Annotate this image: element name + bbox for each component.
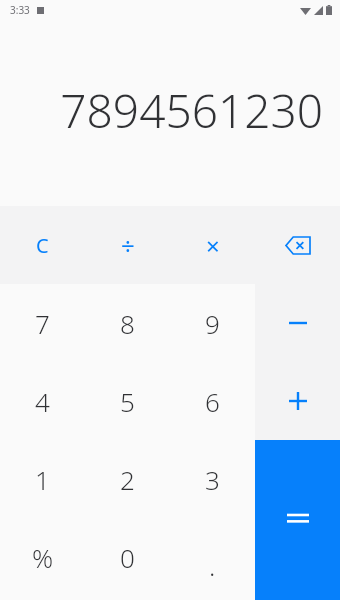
staticText: 1 (35, 462, 50, 497)
button[interactable]: 4 (0, 362, 85, 440)
button[interactable]: 6 (170, 362, 255, 440)
button[interactable]: C (0, 206, 85, 284)
staticText: × (206, 229, 220, 262)
button[interactable]: ÷ (85, 206, 170, 284)
button[interactable]: 1 (0, 440, 85, 518)
button[interactable] (255, 284, 340, 362)
staticText: C (36, 232, 49, 259)
button[interactable]: 2 (85, 440, 170, 518)
staticText: 6 (205, 384, 220, 419)
button[interactable]: Equals (255, 440, 340, 600)
button[interactable] (255, 362, 340, 440)
button[interactable]: 7 (0, 284, 85, 362)
button[interactable]: 9 (170, 284, 255, 362)
staticText: ÷ (121, 229, 135, 262)
staticText: 7894561230 (60, 79, 323, 142)
staticText: 5 (120, 384, 135, 419)
button[interactable]: × (170, 206, 255, 284)
staticText: . (209, 548, 216, 583)
staticText: 4 (35, 384, 50, 419)
button[interactable]: % (0, 518, 85, 596)
button[interactable]: Backspace (255, 206, 340, 284)
staticText: 7 (35, 306, 50, 341)
staticText: 3 (205, 462, 220, 497)
staticText: 3:33 (10, 3, 30, 17)
button[interactable]: . (170, 518, 255, 596)
button[interactable]: 0 (85, 518, 170, 596)
button[interactable]: 8 (85, 284, 170, 362)
staticText: 9 (205, 306, 220, 341)
staticText: 2 (120, 462, 135, 497)
staticText: 0 (120, 540, 135, 575)
button[interactable]: 3 (170, 440, 255, 518)
button[interactable]: 5 (85, 362, 170, 440)
staticText: % (32, 540, 54, 575)
staticText: 8 (120, 306, 135, 341)
